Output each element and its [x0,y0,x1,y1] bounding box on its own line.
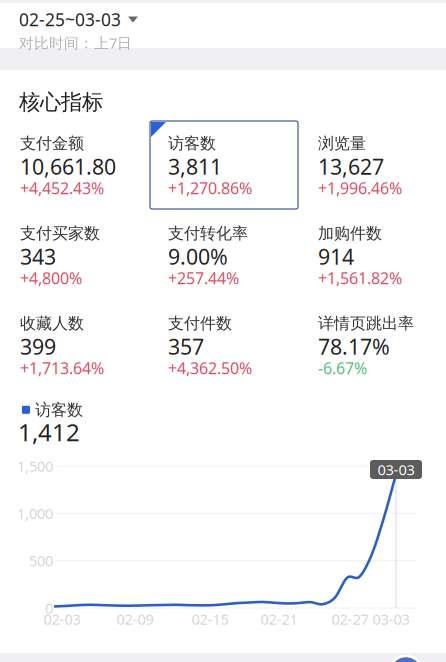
staticText: 03-03 [372,609,409,629]
staticText: +1,561.82% [318,267,402,289]
staticText: 0 [45,598,53,618]
staticText: 02-21 [260,609,297,629]
staticText: 访客数 [168,134,216,153]
staticText: 13,627 [318,152,384,181]
staticText: 02-25~03-03 [19,8,121,31]
staticText: 访客数 [35,400,83,420]
staticText: 收藏人数 [20,314,84,333]
staticText: 02-09 [116,609,153,629]
staticText: 1,000 [17,504,53,523]
staticText: 支付买家数 [20,224,100,243]
staticText: 343 [20,242,56,271]
staticText: +257.44% [168,267,239,289]
staticText: 914 [318,242,354,271]
staticText: 支付转化率 [168,224,248,243]
staticText: 02-03 [43,609,80,629]
staticText: 3,811 [168,152,222,181]
button[interactable]: 收藏人数 [20,313,152,385]
staticText: 1,500 [17,456,53,476]
staticText: 03-03 [377,460,414,479]
staticText: 02-15 [191,609,228,629]
button[interactable]: 详情页跳出率 [318,313,446,385]
button[interactable]: 更多 [390,657,422,662]
staticText: 对比时间：上7日 [19,33,132,52]
staticText: 详情页跳出率 [318,314,414,333]
button[interactable]: 访客数 [168,133,300,205]
staticText: 核心指标 [19,89,103,115]
button[interactable]: 加购件数 [318,223,446,295]
staticText: 357 [168,332,204,361]
staticText: +1,996.46% [318,177,402,199]
staticText: +4,800% [20,267,82,289]
staticText: 支付金额 [20,134,84,153]
staticText: +4,362.50% [168,357,252,379]
staticText: +4,452.43% [20,177,104,199]
staticText: 支付件数 [168,314,232,333]
button[interactable]: 支付件数 [168,313,300,385]
staticText: 500 [29,551,53,570]
button[interactable]: 支付买家数 [20,223,152,295]
staticText: +1,713.64% [20,357,104,379]
button[interactable]: 浏览量 [318,133,446,205]
staticText: 02-27 [331,609,368,629]
staticText: 浏览量 [318,134,366,153]
staticText: 10,661.80 [20,152,116,181]
staticText: 78.17% [318,332,390,361]
button[interactable]: 支付转化率 [168,223,300,295]
staticText: 加购件数 [318,224,382,243]
staticText: 1,412 [18,416,80,448]
staticText: +1,270.86% [168,177,252,199]
button[interactable]: 支付金额 [20,133,152,205]
staticText: -6.67% [318,357,367,379]
staticText: 9.00% [168,242,228,271]
staticText: 399 [20,332,56,361]
button[interactable]: 02-25~03-03 [19,8,138,31]
